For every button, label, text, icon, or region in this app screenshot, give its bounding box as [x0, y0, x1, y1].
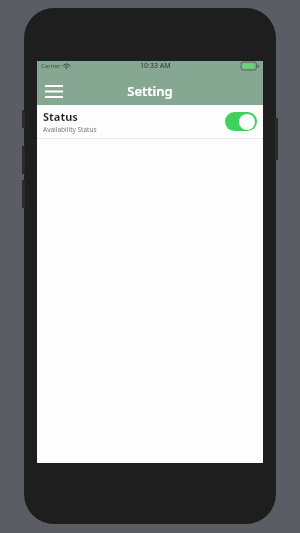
staticText: Setting — [37, 82, 263, 100]
button[interactable]: Open navigation menu — [41, 78, 67, 104]
button[interactable]: Availability status toggle, on — [225, 112, 257, 131]
staticText: Availability Status — [43, 125, 97, 134]
button[interactable]: Status — [37, 105, 263, 138]
staticText: Status — [43, 109, 78, 124]
staticText: Carrier — [41, 62, 61, 70]
staticText: 10:33 AM — [140, 61, 171, 71]
